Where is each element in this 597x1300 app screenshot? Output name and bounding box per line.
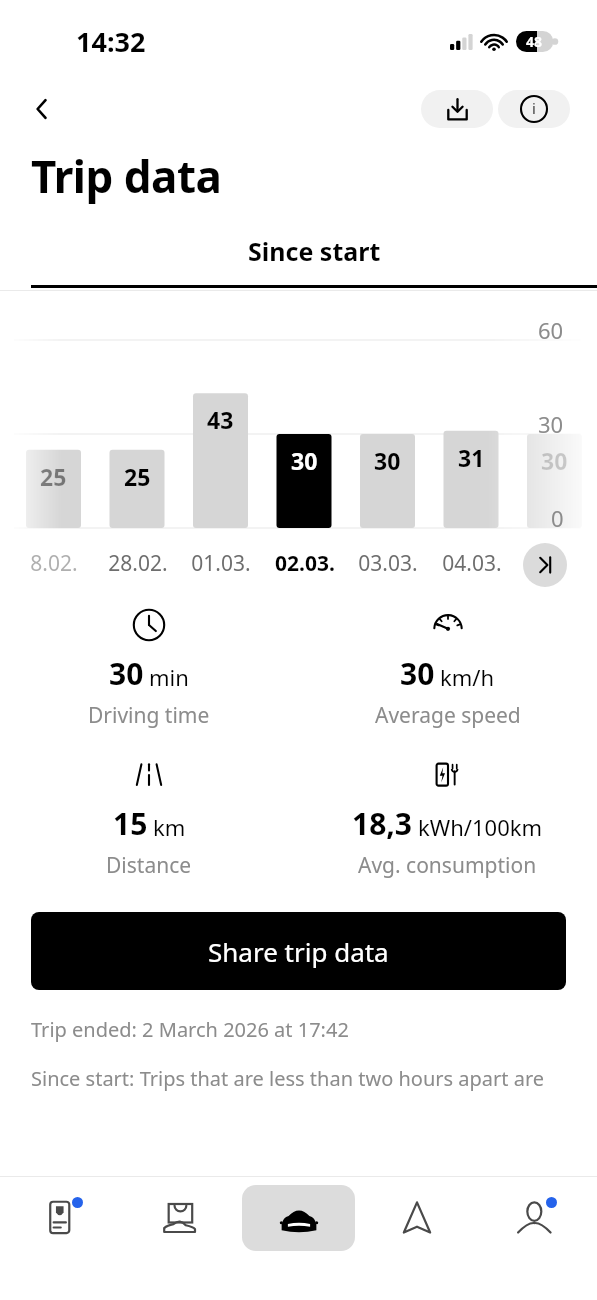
staticText: Average speed (375, 701, 521, 730)
staticText: kWh/100km (418, 812, 543, 842)
staticText: 0 (548, 549, 561, 578)
staticText: 8.02. (30, 549, 78, 578)
staticText: Avg. consumption (358, 851, 537, 880)
staticText: Trip ended: 2 March 2026 at 17:42 (31, 1016, 349, 1043)
staticText: 04.03. (442, 549, 502, 578)
staticText: 15 (113, 803, 148, 844)
button[interactable]: Navigation (360, 1185, 473, 1251)
staticText: Distance (106, 851, 192, 880)
staticText: 03.03. (358, 549, 418, 578)
staticText: Trip data (31, 146, 222, 206)
staticText: 01.03. (191, 549, 251, 578)
button[interactable]: 18,3 (298, 756, 597, 880)
staticText: 14:32 (76, 23, 146, 60)
staticText: 28.02. (108, 549, 168, 578)
staticText: 25 (40, 461, 67, 492)
staticText: 02.03. (275, 549, 335, 578)
staticText: km/h (440, 662, 495, 692)
staticText: Since start (248, 234, 381, 268)
button[interactable]: Shop (124, 1185, 237, 1251)
staticText: 30 (109, 653, 144, 694)
staticText: 30 (541, 445, 568, 476)
staticText: km (153, 812, 186, 842)
button[interactable]: Vehicle (242, 1185, 355, 1251)
button[interactable]: Info (498, 90, 570, 128)
staticText: Driving time (88, 701, 210, 730)
button[interactable]: Profile (479, 1185, 592, 1251)
button[interactable]: Download (421, 90, 493, 128)
staticText: i (532, 98, 536, 118)
button[interactable]: 30 (0, 606, 298, 730)
staticText: 30 (538, 409, 564, 439)
staticText: Share trip data (208, 934, 389, 969)
button[interactable]: 15 (0, 756, 298, 880)
staticText: 30 (400, 653, 435, 694)
staticText: 31 (458, 442, 485, 473)
staticText: min (149, 662, 189, 692)
button[interactable]: Next (523, 543, 567, 587)
button[interactable]: 30 (298, 606, 597, 730)
button[interactable]: Documents (5, 1185, 118, 1251)
staticText: 25 (124, 461, 151, 492)
staticText: 0 (551, 503, 564, 533)
staticText: 43 (207, 404, 234, 435)
staticText: 30 (291, 445, 318, 476)
button[interactable]: Since start (31, 234, 597, 288)
staticText: 60 (538, 315, 564, 345)
staticText: 30 (374, 445, 401, 476)
button[interactable]: Back (20, 87, 64, 131)
staticText: 18,3 (352, 803, 413, 844)
button[interactable]: Share trip data (31, 912, 566, 990)
staticText: 48 (526, 32, 543, 51)
staticText: Since start: Trips that are less than tw… (31, 1065, 545, 1092)
